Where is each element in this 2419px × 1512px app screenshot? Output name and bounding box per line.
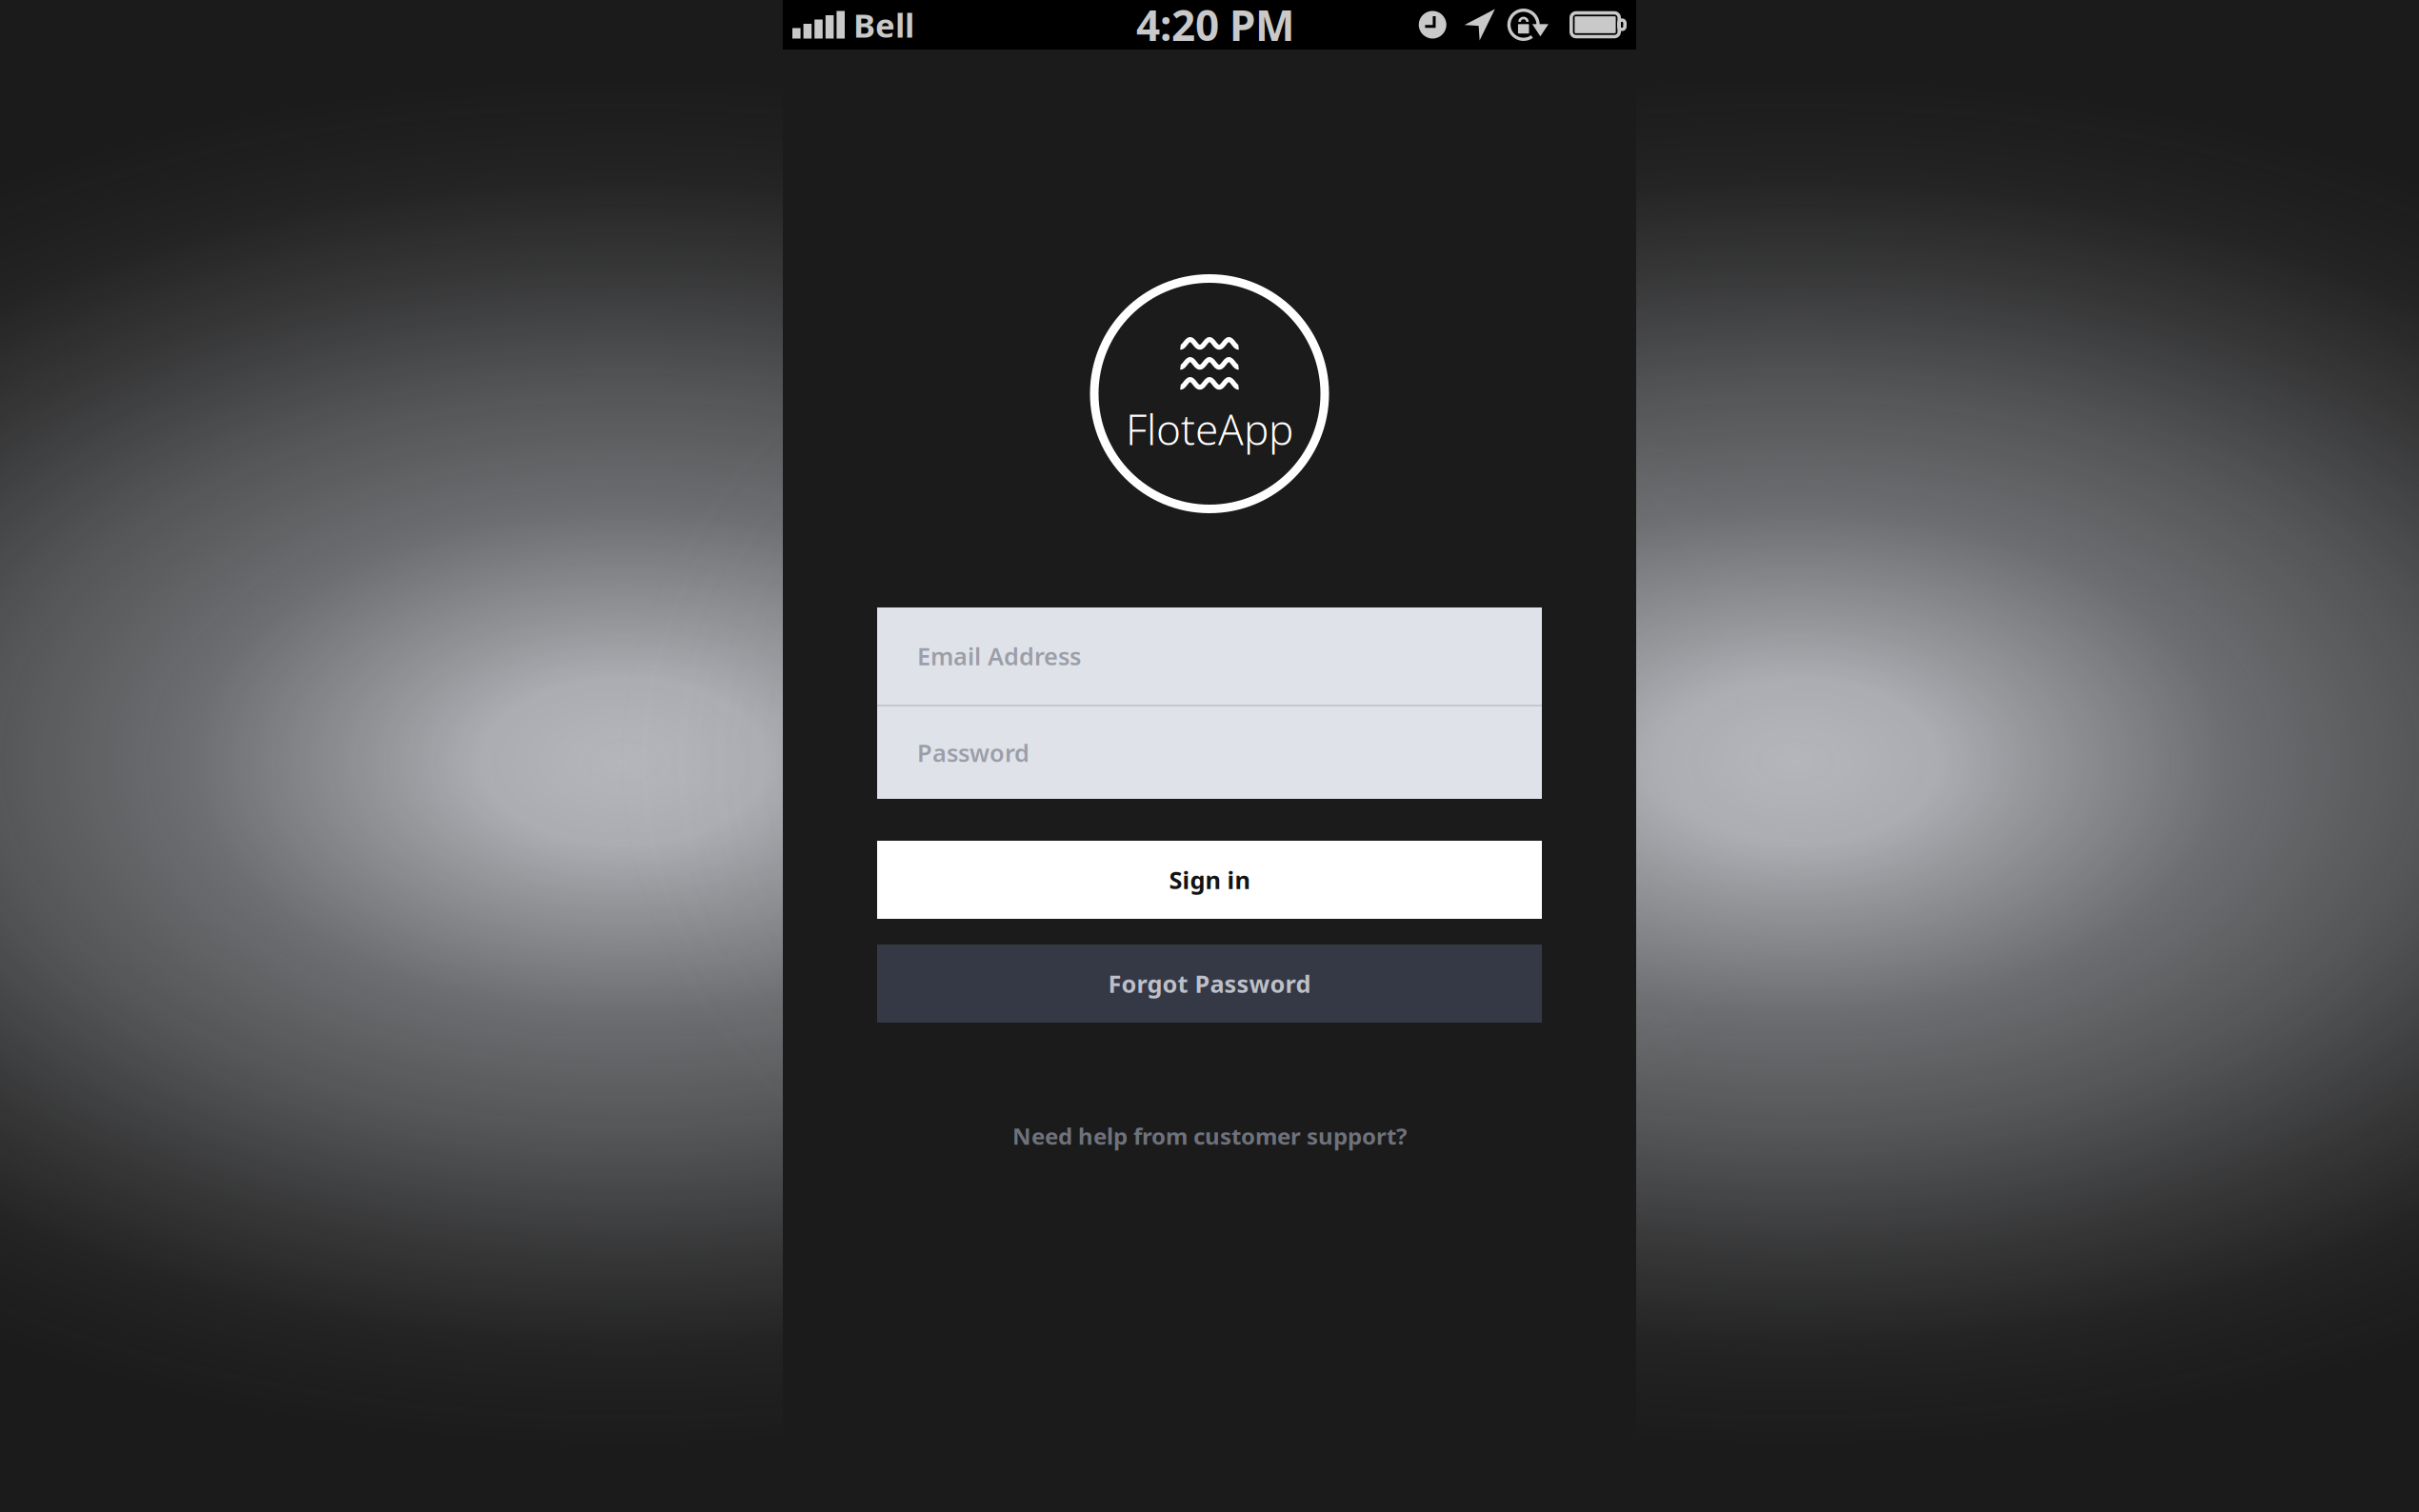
staticText: 4:20 PM (1136, 0, 1294, 53)
button[interactable]: Password (877, 706, 1542, 799)
staticText: Password (917, 737, 1030, 769)
button[interactable]: Email Address (877, 607, 1542, 705)
staticText: FloteApp (1126, 401, 1293, 457)
staticText: Bell (853, 3, 914, 47)
staticText: Forgot Password (1108, 968, 1311, 1000)
button[interactable]: Need help from customer support? (877, 1114, 1542, 1158)
staticText: Sign in (1169, 864, 1250, 896)
button[interactable]: Forgot Password (877, 945, 1542, 1023)
button[interactable]: Sign in (877, 841, 1542, 919)
staticText: Need help from customer support? (1012, 1121, 1407, 1151)
staticText: Email Address (917, 640, 1081, 672)
